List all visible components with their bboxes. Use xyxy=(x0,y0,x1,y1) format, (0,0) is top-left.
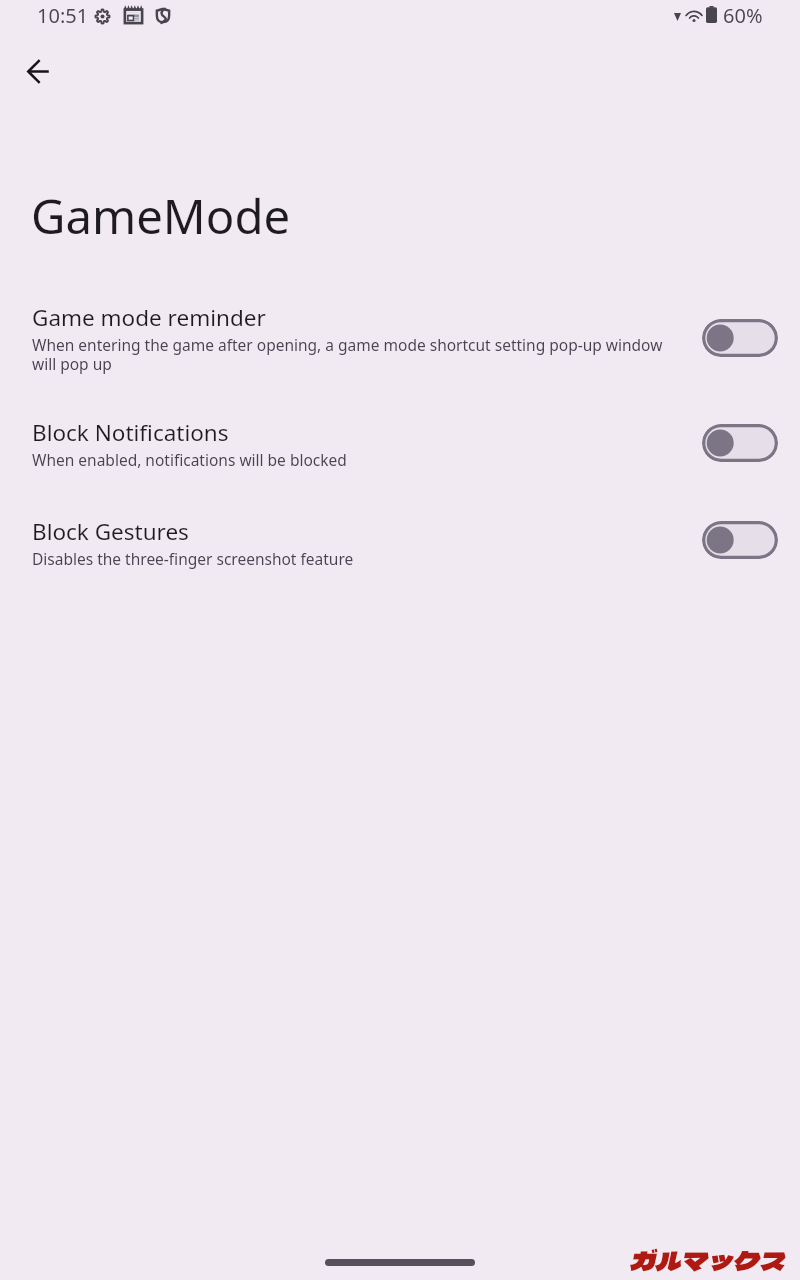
button[interactable]: Block Notifications switch, off xyxy=(702,424,778,462)
staticText: 60% xyxy=(723,3,763,28)
staticText: 10:51 xyxy=(37,3,89,28)
staticText: When entering the game after opening, a … xyxy=(32,336,672,374)
button[interactable]: Block Gestures switch, off xyxy=(702,521,778,559)
staticText: Block Gestures xyxy=(32,519,189,546)
button[interactable]: Game mode reminder xyxy=(0,291,800,387)
staticText: Block Notifications xyxy=(32,420,229,447)
button[interactable]: Block Notifications xyxy=(0,406,800,483)
staticText: ガルマックス xyxy=(627,1245,784,1277)
button[interactable]: Back xyxy=(14,47,62,95)
staticText: Game mode reminder xyxy=(32,305,266,332)
staticText: GameMode xyxy=(31,189,291,246)
button[interactable]: Block Gestures xyxy=(0,505,800,582)
button[interactable]: Game mode reminder switch, off xyxy=(702,319,778,357)
staticText: When enabled, notifications will be bloc… xyxy=(32,451,347,470)
staticText: Disables the three-finger screenshot fea… xyxy=(32,550,354,569)
